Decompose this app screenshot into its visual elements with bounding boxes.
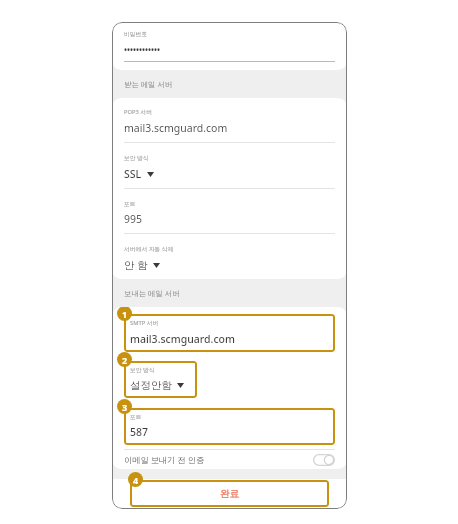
staticText: 587 xyxy=(130,425,149,439)
other: Authenticate before sending email xyxy=(213,454,335,466)
staticText: SMTP 서버 xyxy=(130,319,159,327)
staticText: 보안 방식 xyxy=(130,366,155,374)
staticText: •••••••••••• xyxy=(124,44,161,55)
staticText: 995 xyxy=(124,212,143,226)
staticText: 서버에서 자동 삭제 xyxy=(124,245,174,253)
staticText: 받는 메일 서버 xyxy=(124,79,173,89)
staticText: mail3.scmguard.com xyxy=(124,121,228,135)
staticText: POP3 서버 xyxy=(124,108,152,116)
staticText: 2 xyxy=(122,354,128,366)
staticText: 3 xyxy=(122,401,128,413)
staticText: 비밀번호 xyxy=(124,30,148,37)
staticText: 보안 방식 xyxy=(124,154,149,162)
button[interactable]: 보안 방식 xyxy=(124,361,197,398)
staticText: 포트 xyxy=(130,413,142,420)
button[interactable]: 완료 xyxy=(130,480,329,507)
staticText: 보내는 메일 서버 xyxy=(124,288,180,298)
staticText: 4 xyxy=(133,474,139,486)
staticText: 완료 xyxy=(220,488,239,500)
staticText: 설정안함 xyxy=(130,379,172,392)
staticText: 포트 xyxy=(124,200,136,207)
button[interactable]: 포트 xyxy=(124,408,335,445)
button[interactable]: 이메일 보내기 전 인증 xyxy=(124,450,335,469)
staticText: 1 xyxy=(122,308,128,320)
staticText: mail3.scmguard.com xyxy=(130,332,235,346)
staticText: SSL xyxy=(124,167,142,181)
staticText: 안 함 xyxy=(124,258,148,272)
staticText: 이메일 보내기 전 인증 xyxy=(124,454,205,465)
button[interactable]: SMTP 서버 xyxy=(124,314,335,352)
